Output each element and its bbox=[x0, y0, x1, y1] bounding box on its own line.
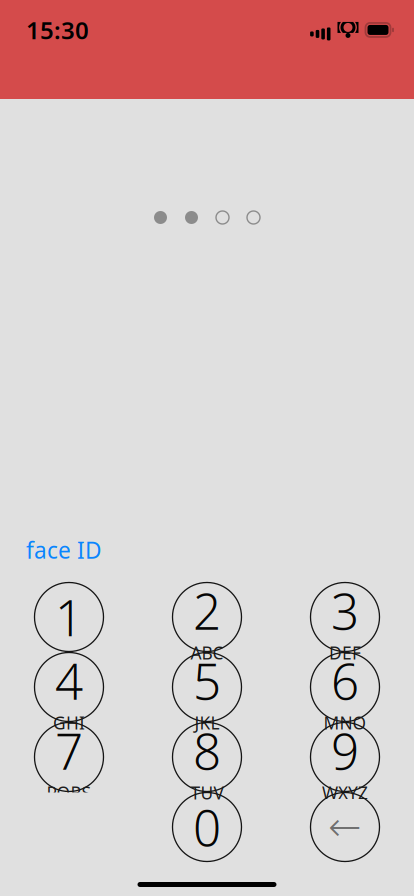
staticText: 5 bbox=[193, 648, 221, 713]
staticText: MNO bbox=[323, 711, 366, 734]
button[interactable]: face ID bbox=[26, 530, 112, 570]
button[interactable]: 8 bbox=[172, 722, 241, 791]
staticText: 15:30 bbox=[26, 14, 89, 46]
staticText: 4 bbox=[55, 648, 83, 713]
staticText: WXYZ bbox=[322, 781, 368, 804]
staticText: 7 bbox=[55, 718, 83, 783]
staticText: 2 bbox=[193, 578, 221, 643]
staticText: PQRS bbox=[46, 781, 91, 804]
staticText: TUV bbox=[190, 781, 223, 804]
staticText: 6 bbox=[331, 648, 359, 713]
button[interactable]: 5 bbox=[172, 652, 241, 721]
button[interactable]: 1 bbox=[34, 582, 103, 651]
button[interactable]: 7 bbox=[34, 722, 103, 791]
staticText: ABC bbox=[190, 641, 223, 664]
staticText: GHI bbox=[53, 711, 85, 734]
staticText: 1 bbox=[55, 584, 83, 650]
staticText: 8 bbox=[193, 718, 221, 783]
button[interactable]: 9 bbox=[310, 722, 379, 791]
button[interactable]: 6 bbox=[310, 652, 379, 721]
button[interactable]: 3 bbox=[310, 582, 379, 651]
staticText: ← bbox=[328, 804, 362, 850]
button[interactable]: 0 bbox=[172, 792, 241, 861]
staticText: face ID bbox=[26, 535, 102, 565]
staticText: 0 bbox=[193, 794, 221, 860]
staticText: 9 bbox=[331, 718, 359, 783]
staticText: 3 bbox=[331, 578, 359, 643]
staticText: JKL bbox=[194, 711, 219, 734]
button[interactable]: 2 bbox=[172, 582, 241, 651]
button[interactable]: 4 bbox=[34, 652, 103, 721]
staticText: DEF bbox=[329, 641, 361, 664]
button[interactable]: Delete bbox=[310, 792, 379, 861]
